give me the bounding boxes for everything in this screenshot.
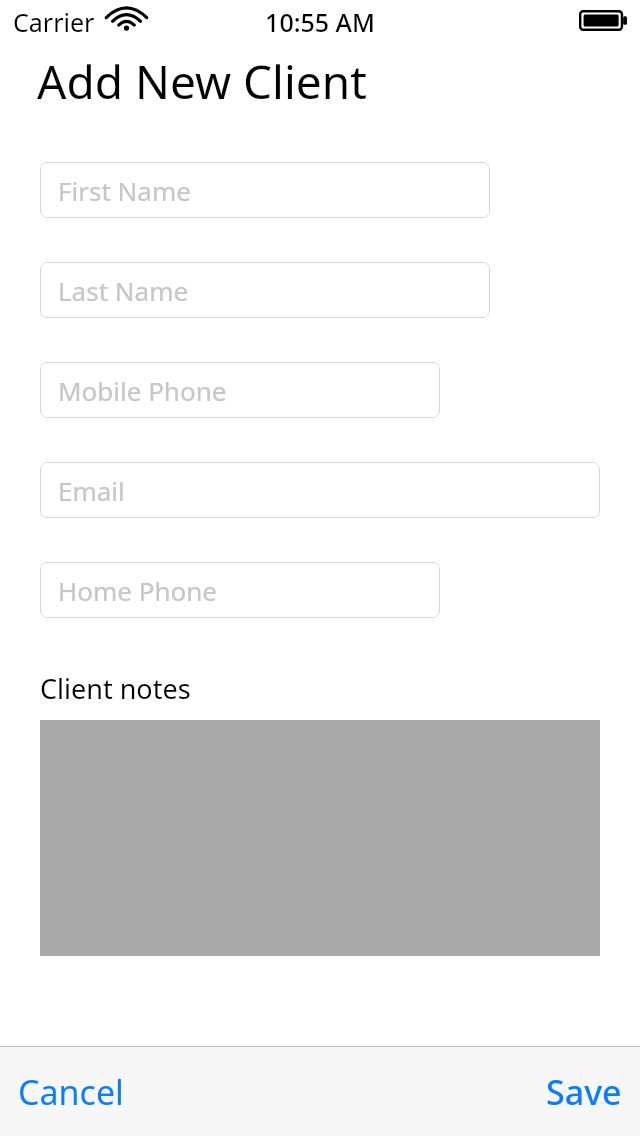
button[interactable]: Email xyxy=(40,462,600,518)
staticText: Carrier xyxy=(13,5,95,39)
button[interactable]: Cancel xyxy=(6,1055,136,1129)
staticText: Save xyxy=(546,1069,622,1115)
button[interactable]: First Name xyxy=(40,162,490,218)
button[interactable]: Save xyxy=(534,1055,634,1129)
staticText: Mobile Phone xyxy=(58,373,227,408)
staticText: Last Name xyxy=(58,273,189,308)
button[interactable]: Last Name xyxy=(40,262,490,318)
button[interactable]: Mobile Phone xyxy=(40,362,440,418)
staticText: Cancel xyxy=(18,1069,124,1115)
staticText: Add New Client xyxy=(37,50,367,113)
button[interactable]: Home Phone xyxy=(40,562,440,618)
staticText: First Name xyxy=(58,173,191,208)
staticText: 10:55 AM xyxy=(265,5,375,39)
other: Wi-Fi signal xyxy=(111,9,142,32)
other: Battery full xyxy=(579,10,627,31)
staticText: Email xyxy=(58,473,125,508)
staticText: Home Phone xyxy=(58,573,217,608)
staticText: Client notes xyxy=(40,670,191,707)
